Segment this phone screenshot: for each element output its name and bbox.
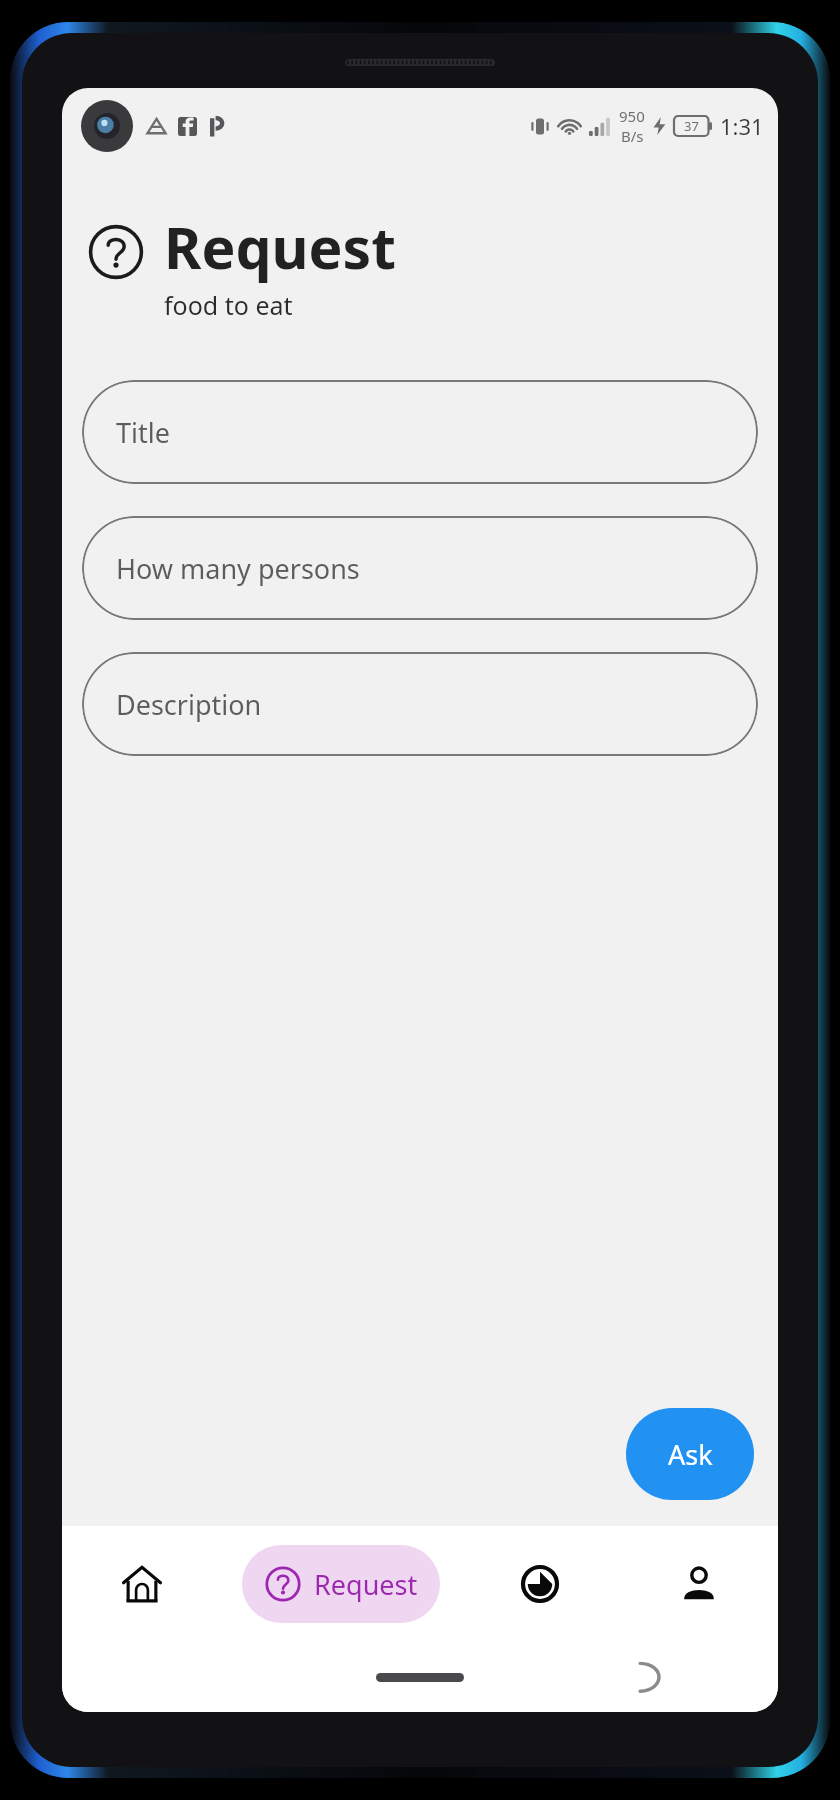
staticText: How many persons (116, 550, 360, 587)
staticText: Description (116, 686, 262, 723)
button[interactable]: Help (86, 222, 146, 282)
button[interactable]: Title (82, 380, 758, 484)
button[interactable]: Profile (619, 1526, 778, 1642)
staticText: Request (164, 208, 396, 286)
button[interactable]: Description (82, 652, 758, 756)
button[interactable]: Request (242, 1545, 440, 1623)
button[interactable]: Pending (460, 1526, 619, 1642)
button[interactable]: Home (62, 1526, 221, 1642)
button[interactable]: Ask (626, 1408, 754, 1500)
staticText: Ask (668, 1436, 713, 1473)
staticText: 37 (684, 117, 699, 135)
staticText: 950 (619, 106, 645, 126)
other: Back (634, 1660, 668, 1694)
button[interactable]: How many persons (82, 516, 758, 620)
staticText: B/s (621, 126, 644, 146)
staticText: food to eat (164, 288, 293, 322)
staticText: Request (314, 1566, 418, 1603)
staticText: Title (116, 414, 170, 451)
staticText: 1:31 (720, 111, 764, 141)
